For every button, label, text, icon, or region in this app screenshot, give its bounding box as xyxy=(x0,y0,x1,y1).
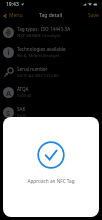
button[interactable]: S xyxy=(0,102,102,122)
button[interactable]: Menu xyxy=(0,10,26,21)
staticText: 04:1F:A2:3B:C1:D2:80 xyxy=(17,73,59,79)
staticText: Menu xyxy=(9,12,23,19)
staticText: 19:43 xyxy=(6,1,19,8)
staticText: NfcA, MifareUltralight xyxy=(17,53,60,59)
button[interactable]: Serial number xyxy=(0,62,102,82)
button[interactable]: Technologies available xyxy=(0,42,102,62)
staticText: Save xyxy=(88,12,99,19)
staticText: Technologies available xyxy=(17,46,66,52)
button[interactable]: Save xyxy=(85,10,102,21)
staticText: NXP MIFARE Ultralight xyxy=(17,33,61,39)
staticText: S xyxy=(6,108,11,118)
staticText: 0x0044 xyxy=(17,93,32,99)
staticText: Approach an NFC Tag xyxy=(27,178,75,184)
staticText: 0x00 xyxy=(17,113,27,119)
staticText: Tag types: ISO 14443-3A xyxy=(17,26,71,32)
staticText: A xyxy=(6,88,12,98)
button[interactable]: Tag types: ISO 14443-3A xyxy=(0,22,102,42)
staticText: SAK xyxy=(17,106,26,112)
staticText: ATQA xyxy=(17,86,29,92)
button[interactable]: A xyxy=(0,82,102,102)
staticText: Serial number xyxy=(17,66,48,72)
staticText: Tag detail xyxy=(39,12,63,19)
